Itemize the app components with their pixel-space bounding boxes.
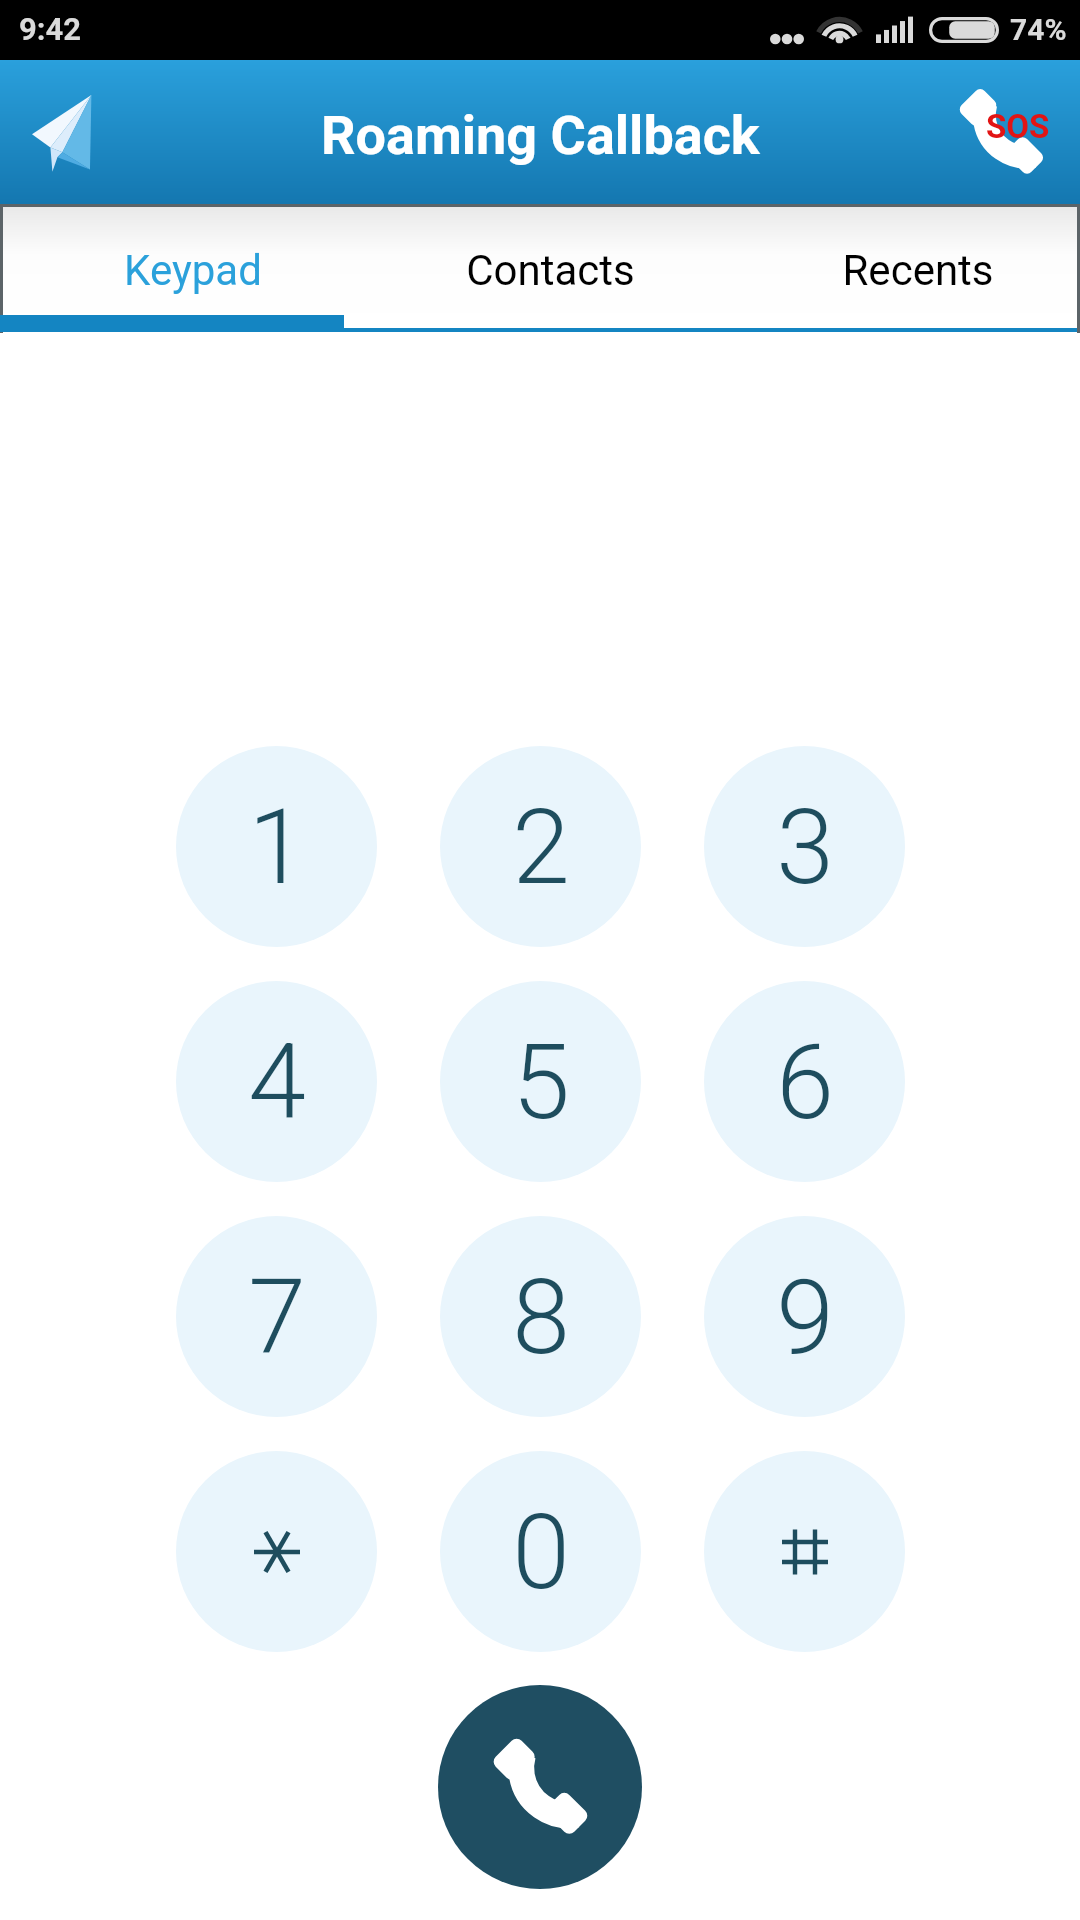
staticText: Contacts	[466, 246, 635, 295]
button[interactable]: 6	[704, 981, 905, 1182]
staticText: 2	[512, 787, 570, 909]
button[interactable]: Call	[438, 1685, 642, 1889]
staticText: 74%	[1010, 12, 1067, 47]
staticText: 9	[776, 1257, 834, 1379]
button[interactable]: SOS emergency call	[940, 71, 1062, 193]
button[interactable]: 3	[704, 746, 905, 947]
button[interactable]: 5	[440, 981, 641, 1182]
button[interactable]: 9	[704, 1216, 905, 1417]
button[interactable]	[176, 1451, 377, 1652]
button[interactable]: 1	[176, 746, 377, 947]
staticText: 8	[512, 1257, 570, 1379]
button[interactable]: Recents	[719, 207, 1077, 319]
staticText: Roaming Callback	[321, 104, 760, 167]
staticText: Keypad	[124, 246, 262, 295]
staticText: SOS	[986, 107, 1050, 146]
button[interactable]: 8	[440, 1216, 641, 1417]
staticText: 5	[512, 1022, 570, 1144]
staticText: 6	[776, 1022, 834, 1144]
staticText: 0	[512, 1492, 570, 1614]
button[interactable]: Contacts	[361, 207, 719, 319]
button[interactable]: 2	[440, 746, 641, 947]
staticText: 4	[248, 1022, 306, 1144]
button[interactable]	[704, 1451, 905, 1652]
staticText: 9:42	[19, 11, 82, 47]
button[interactable]: Send	[11, 80, 115, 184]
staticText: 3	[776, 787, 834, 909]
staticText: 7	[248, 1257, 306, 1379]
staticText: Recents	[842, 246, 994, 295]
button[interactable]: 0	[440, 1451, 641, 1652]
button[interactable]: Keypad	[3, 207, 361, 319]
staticText: 1	[248, 787, 306, 909]
button[interactable]: 7	[176, 1216, 377, 1417]
button[interactable]: 4	[176, 981, 377, 1182]
